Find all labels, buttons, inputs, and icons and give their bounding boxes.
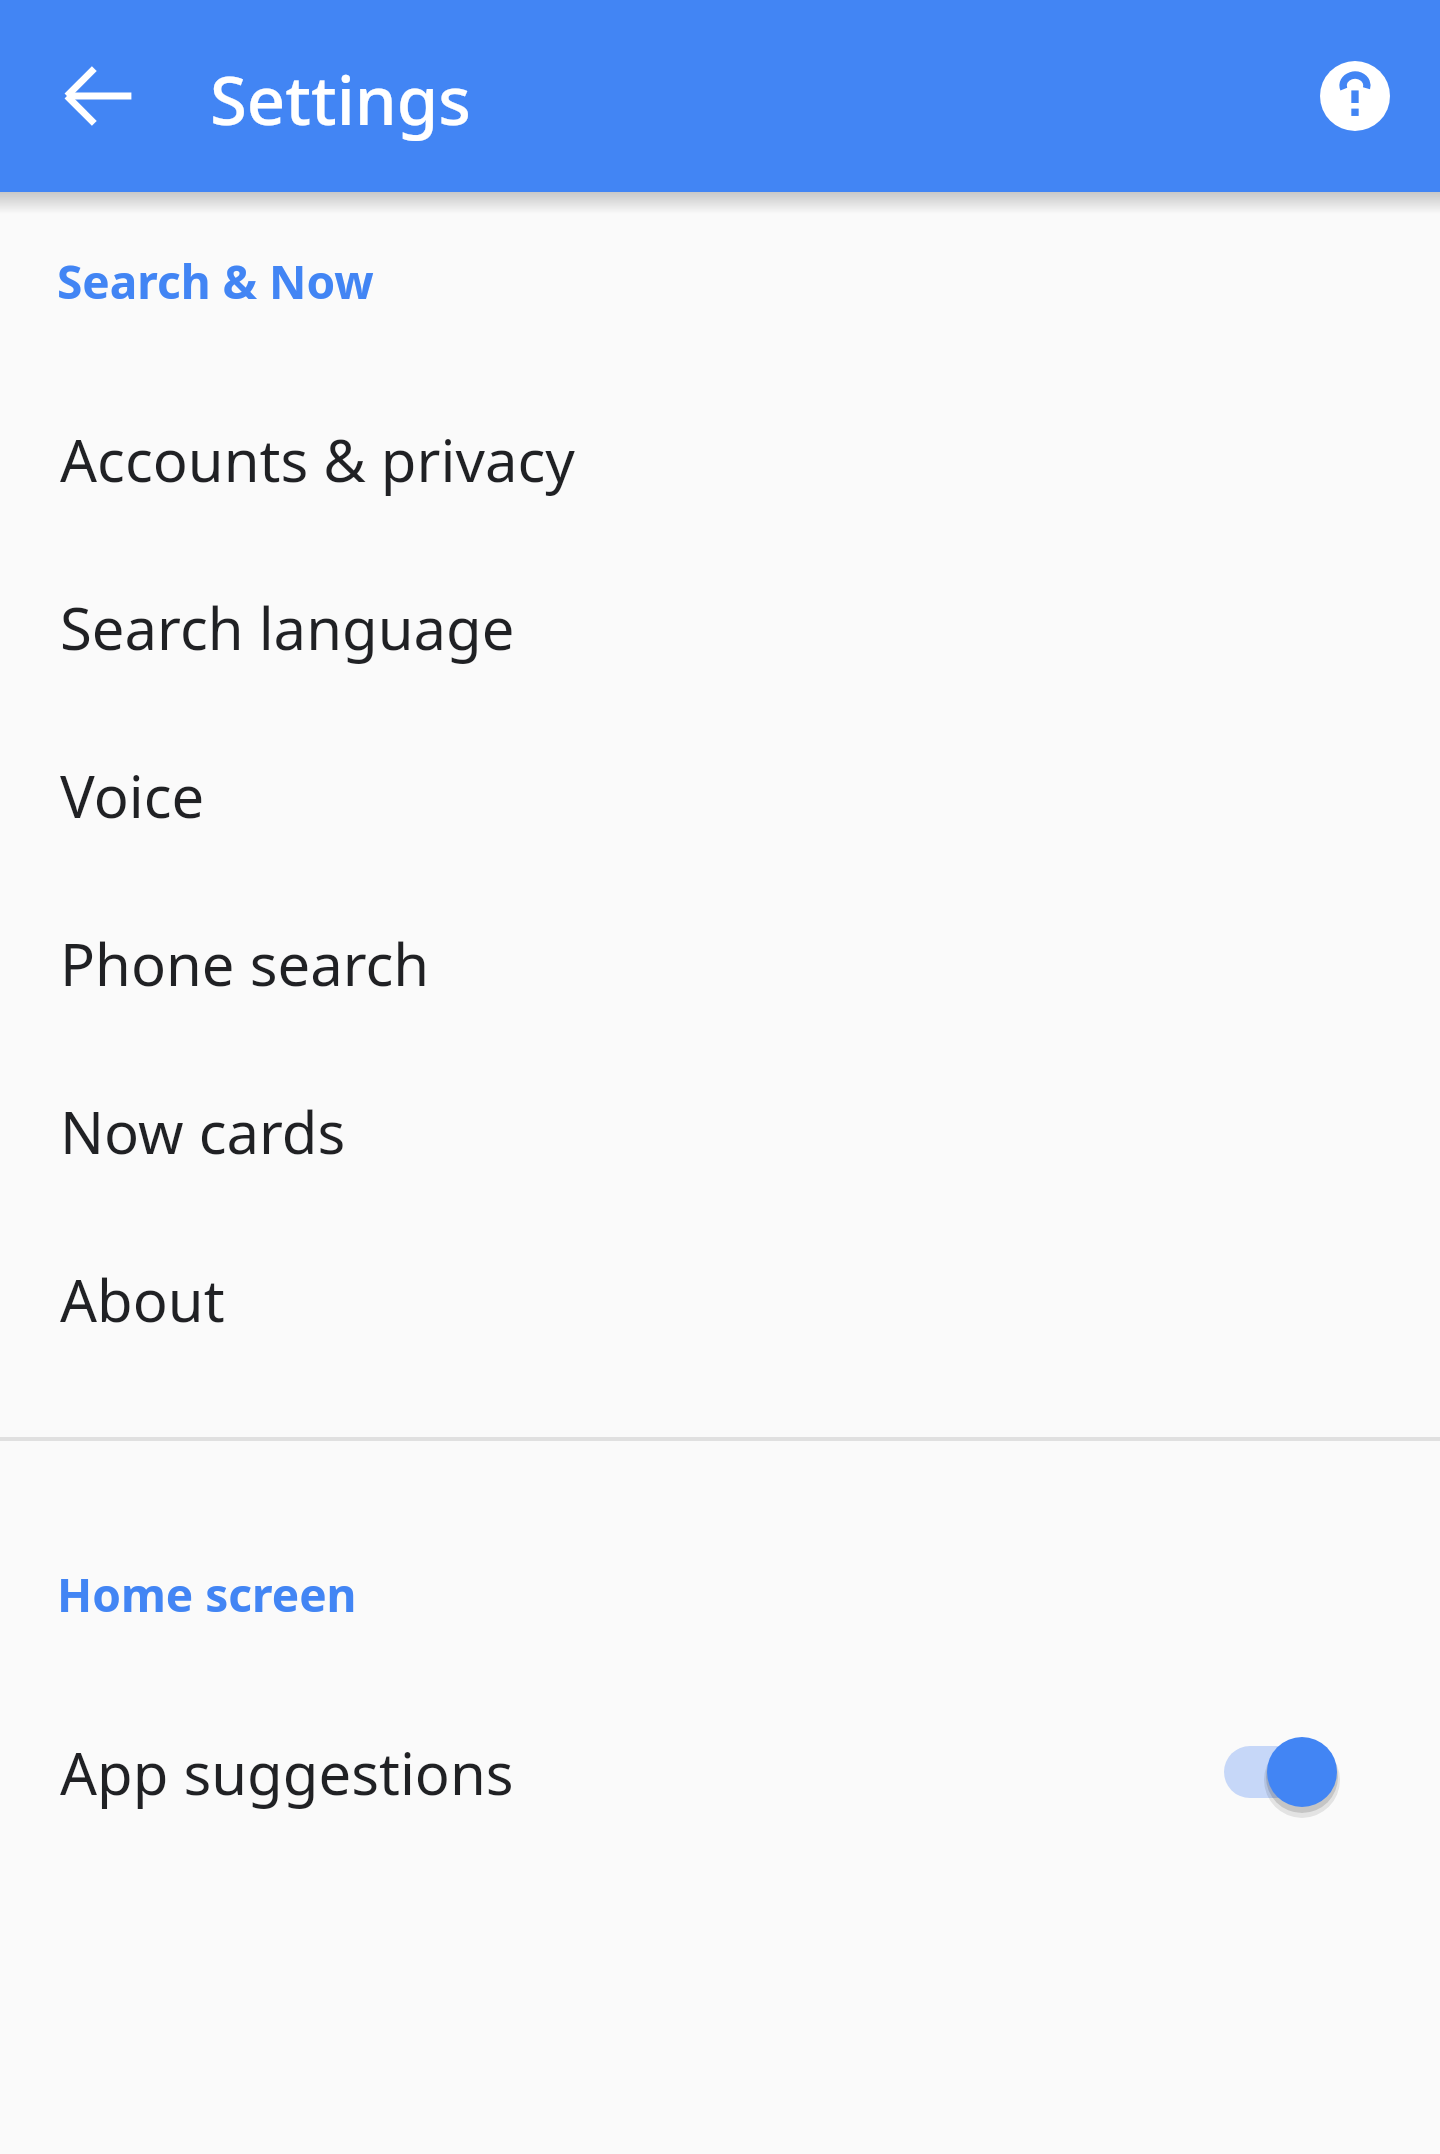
button[interactable]: Accounts & privacy xyxy=(0,375,1440,543)
button[interactable]: App suggestions xyxy=(0,1688,1440,1856)
button[interactable]: Now cards xyxy=(0,1047,1440,1215)
staticText: About xyxy=(60,1260,225,1339)
staticText: Now cards xyxy=(60,1092,346,1171)
button[interactable]: App suggestions toggle, on xyxy=(1220,1730,1368,1814)
staticText: Settings xyxy=(210,53,471,144)
staticText: Voice xyxy=(60,756,205,835)
button[interactable]: Navigate up xyxy=(27,24,171,168)
button[interactable]: Search language xyxy=(0,543,1440,711)
staticText: Home screen xyxy=(57,1563,357,1626)
button[interactable]: Phone search xyxy=(0,879,1440,1047)
button[interactable]: About xyxy=(0,1215,1440,1383)
staticText: Search language xyxy=(60,588,515,667)
staticText: App suggestions xyxy=(60,1733,1220,1812)
staticText: Phone search xyxy=(60,924,430,1003)
button[interactable]: Voice xyxy=(0,711,1440,879)
button[interactable]: Help xyxy=(1283,24,1427,168)
staticText: Accounts & privacy xyxy=(60,420,575,499)
staticText: Search & Now xyxy=(57,250,374,313)
